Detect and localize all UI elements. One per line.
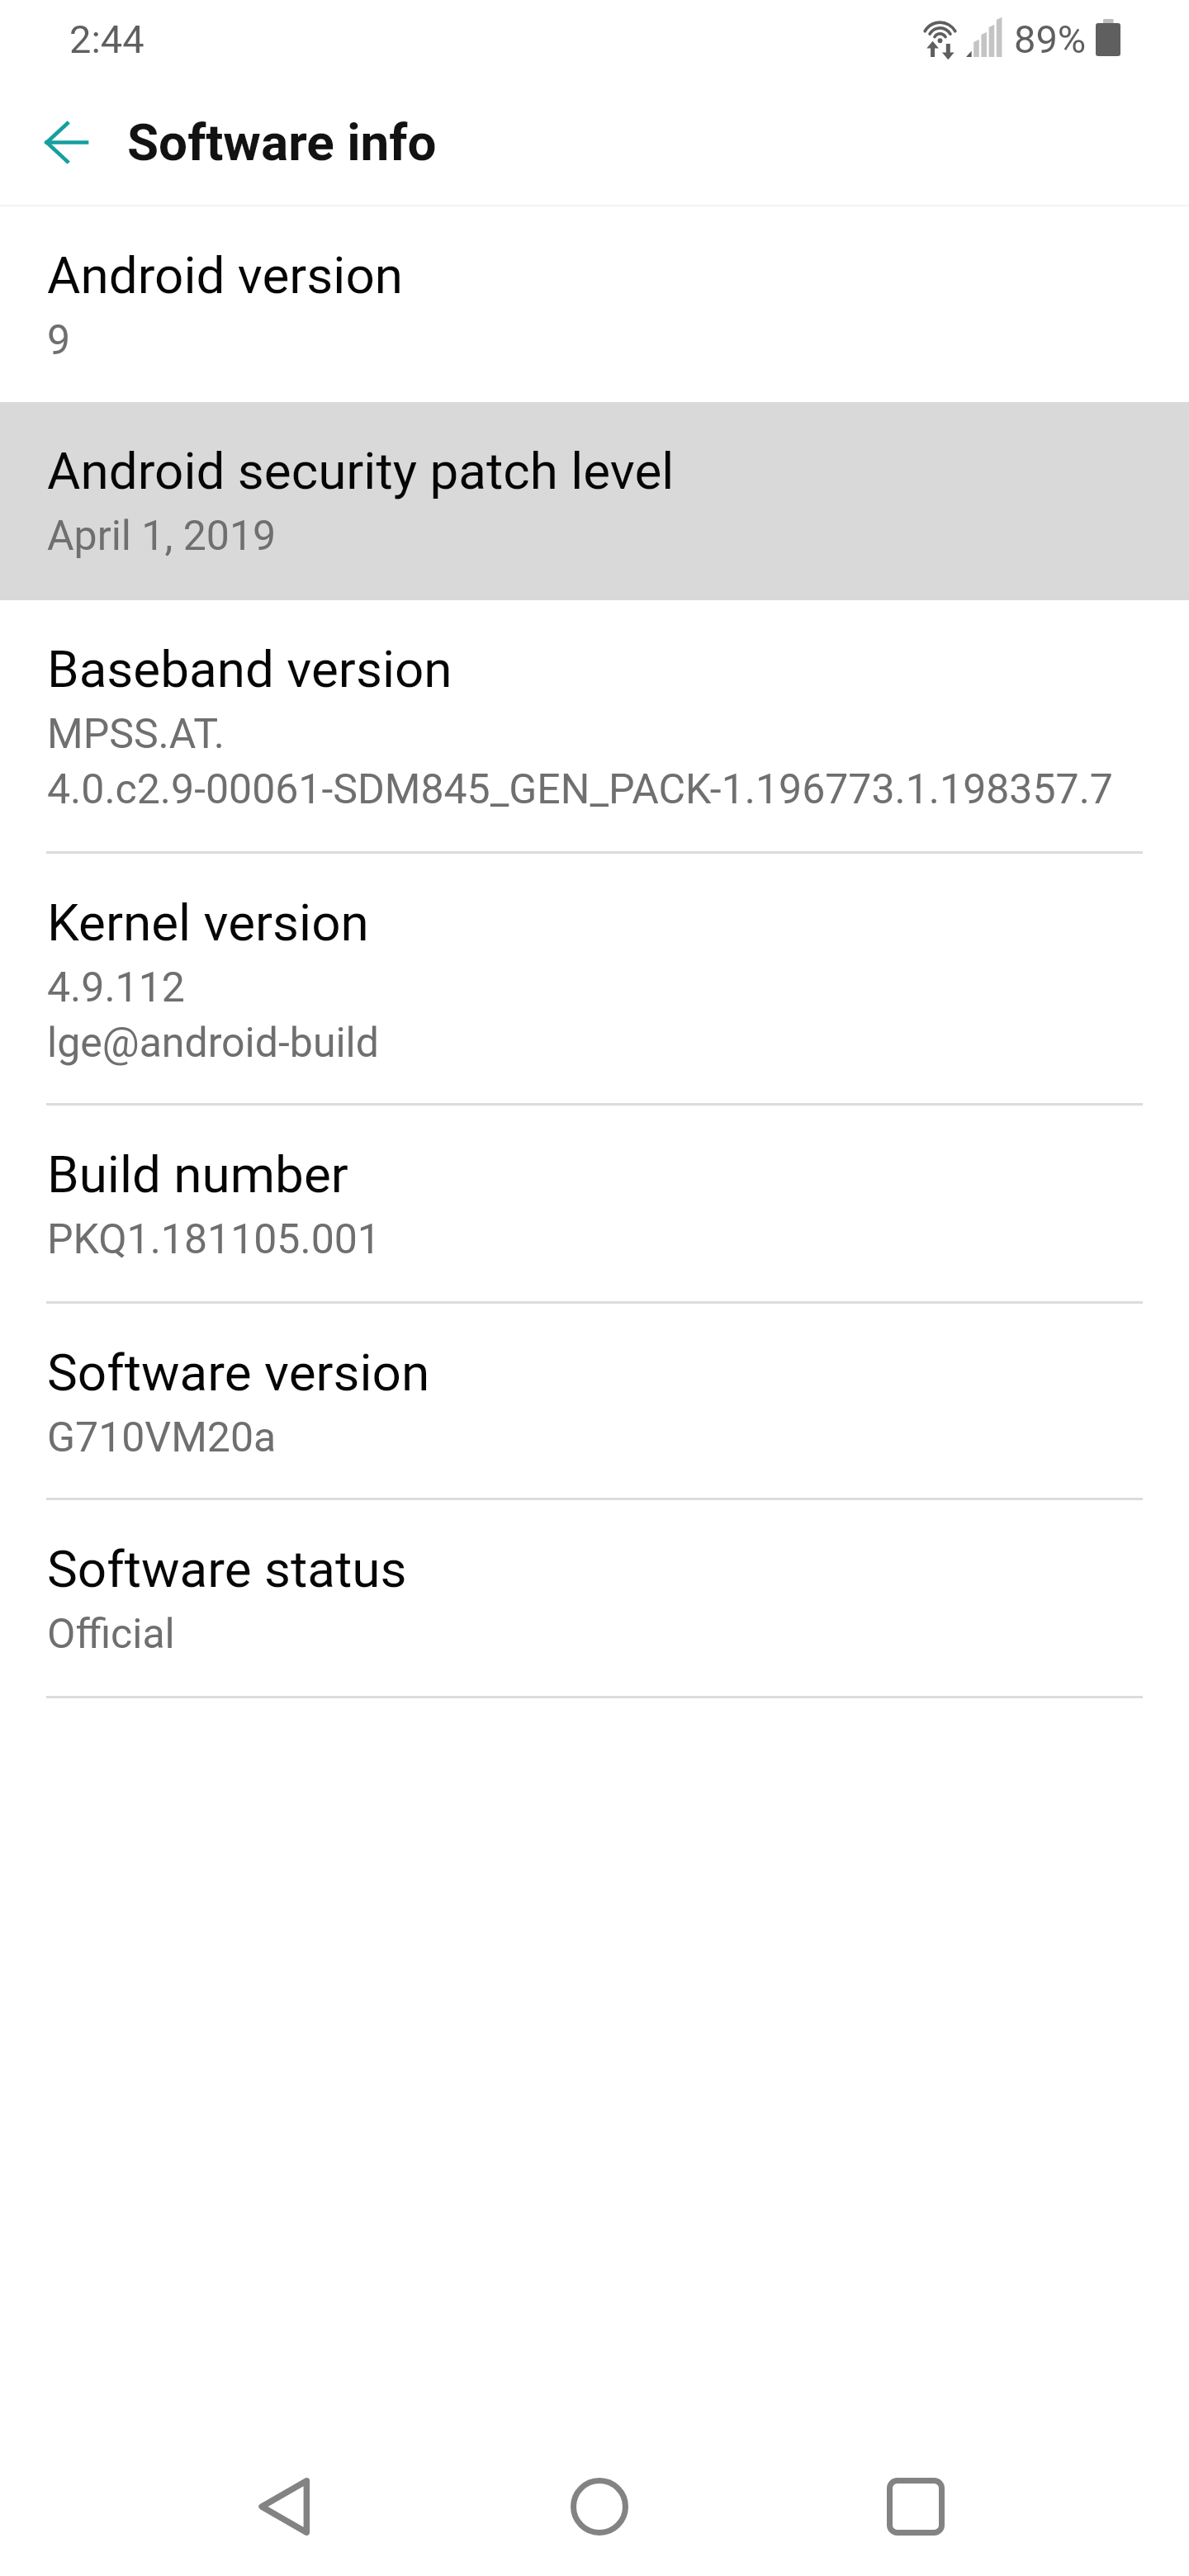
staticText: Android version: [47, 245, 404, 305]
staticText: G710VM20a: [47, 1413, 277, 1462]
staticText: 4.9.112: [47, 964, 185, 1012]
staticText: Software version: [47, 1342, 430, 1403]
staticText: Software info: [127, 112, 437, 173]
button[interactable]: Baseband version: [0, 600, 1189, 851]
staticText: Software status: [47, 1539, 407, 1599]
staticText: lge@android-build: [47, 1019, 379, 1068]
staticText: MPSS.AT.: [47, 710, 225, 759]
staticText: April 1, 2019: [47, 512, 277, 561]
button[interactable]: Back: [21, 97, 111, 187]
staticText: PKQ1.181105.001: [47, 1215, 381, 1264]
button[interactable]: Recent apps: [870, 2461, 961, 2552]
button[interactable]: Back: [238, 2461, 329, 2552]
staticText: Android security patch level: [47, 441, 675, 501]
staticText: 2:44: [69, 17, 144, 62]
staticText: Baseband version: [47, 639, 452, 699]
button[interactable]: Android security patch level: [0, 402, 1189, 600]
staticText: 89%: [1014, 17, 1087, 62]
button[interactable]: Android version: [0, 206, 1189, 402]
button[interactable]: Software status: [0, 1500, 1189, 1696]
staticText: Kernel version: [47, 893, 369, 953]
staticText: 9: [47, 316, 71, 365]
button[interactable]: Build number: [0, 1106, 1189, 1301]
staticText: Build number: [47, 1144, 348, 1205]
button[interactable]: Kernel version: [0, 854, 1189, 1103]
button[interactable]: Software version: [0, 1304, 1189, 1498]
staticText: 4.0.c2.9-00061-SDM845_GEN_PACK-1.196773.…: [47, 765, 1113, 814]
staticText: Official: [47, 1610, 175, 1659]
button[interactable]: Home: [554, 2461, 645, 2552]
